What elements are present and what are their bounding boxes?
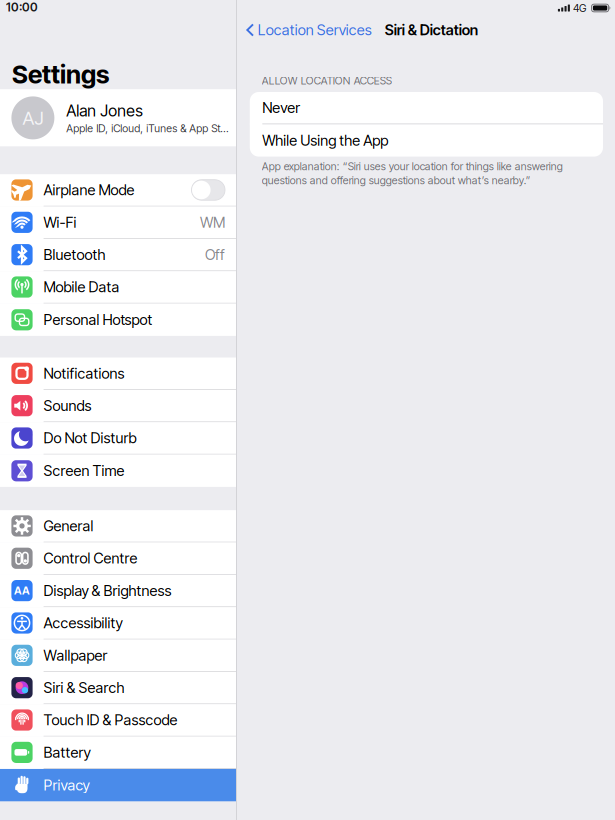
staticText: questions and offering suggestions about… [262,174,531,187]
button[interactable]: General [0,510,236,542]
button[interactable]: Control Centre [0,542,236,575]
staticText: Screen Time [44,462,125,479]
staticText: Do Not Disturb [44,429,137,447]
staticText: Accessibility [44,614,123,632]
staticText: Display & Brightness [44,582,172,599]
staticText: Settings [12,59,109,89]
staticText: Notifications [44,365,125,382]
staticText: WM [200,214,225,231]
staticText: 4G [573,2,586,14]
staticText: General [44,517,94,535]
staticText: Sounds [44,397,92,414]
staticText: Airplane Mode [44,181,135,199]
staticText: Siri & Dictation [385,21,478,39]
button[interactable]: Screen Time [0,455,236,487]
button[interactable]: AA [0,575,236,607]
staticText: Wi-Fi [44,214,77,231]
staticText: Mobile Data [44,278,120,296]
button[interactable]: Touch ID & Passcode [0,704,236,737]
staticText: Never [262,99,300,116]
staticText: Battery [44,744,91,761]
staticText: 10:00 [6,0,38,14]
button[interactable]: Battery [0,737,236,769]
staticText: Apple ID, iCloud, iTunes & App St… [66,122,228,135]
button[interactable]: Location Services [237,16,374,44]
staticText: Off [205,246,225,263]
button[interactable]: Siri & Search [0,672,236,704]
button[interactable]: Mobile Data [0,271,236,304]
staticText: Siri & Search [44,679,125,696]
button[interactable]: Sounds [0,390,236,422]
staticText: AA [14,584,30,597]
button[interactable]: Do Not Disturb [0,422,236,455]
staticText: Alan Jones [66,101,143,120]
button[interactable]: Wallpaper [0,639,236,672]
button[interactable]: Airplane Mode [0,174,236,207]
staticText: AJ [22,107,43,129]
staticText: Wallpaper [44,647,108,664]
button[interactable]: Bluetooth [0,239,236,271]
staticText: Personal Hotspot [44,311,153,328]
staticText: Touch ID & Passcode [44,711,178,729]
button[interactable]: Wi-Fi [0,206,236,239]
staticText: ALLOW LOCATION ACCESS [262,74,392,87]
staticText: Control Centre [44,550,138,567]
button[interactable]: Never [250,92,603,124]
button[interactable]: Personal Hotspot [0,304,236,336]
staticText: App explanation: “Siri uses your locatio… [262,160,563,173]
staticText: While Using the App [262,132,388,149]
button[interactable]: Privacy [0,769,236,801]
staticText: Privacy [44,776,90,794]
button[interactable]: Notifications [0,357,236,390]
button[interactable]: AJ [0,89,236,147]
staticText: Location Services [258,21,372,39]
staticText: Bluetooth [44,246,106,263]
button[interactable]: While Using the App [250,124,603,157]
button[interactable]: Accessibility [0,607,236,640]
